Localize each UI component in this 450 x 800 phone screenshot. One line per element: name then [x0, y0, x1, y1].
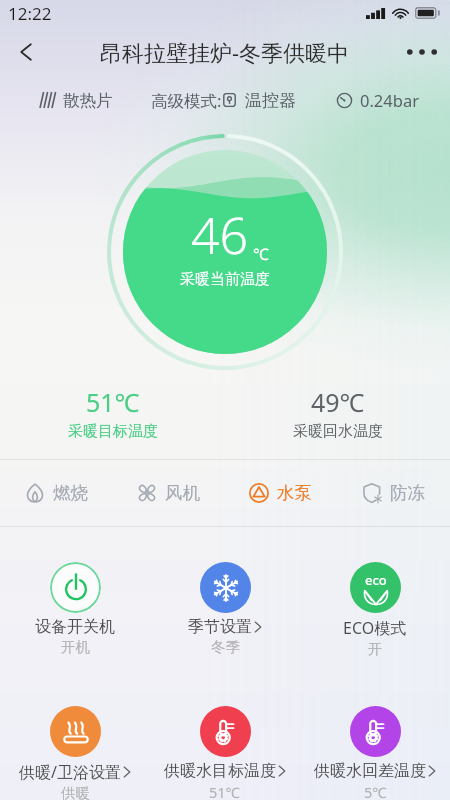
staticText: 46 — [191, 201, 249, 269]
staticText: 温控器 — [245, 90, 296, 111]
staticText: 5℃ — [364, 782, 387, 800]
staticText: 49℃ — [311, 385, 365, 419]
button[interactable]: 供暖水回差温度 — [300, 706, 450, 800]
button[interactable]: Back — [6, 31, 48, 73]
staticText: 供暖水回差温度 — [314, 761, 426, 781]
staticText: 采暖目标温度 — [68, 422, 158, 441]
button[interactable]: 供暖/卫浴设置 — [0, 706, 150, 800]
staticText: 昂科拉壁挂炉-冬季供暖中 — [100, 37, 350, 67]
staticText: 12:22 — [8, 2, 52, 25]
staticText: 供暖 — [61, 784, 90, 800]
staticText: 季节设置 — [188, 617, 252, 637]
staticText: 冬季 — [211, 638, 240, 656]
staticText: 采暖当前温度 — [180, 270, 270, 289]
staticText: 0.24bar — [360, 89, 419, 111]
staticText: 开 — [368, 640, 383, 658]
staticText: 防冻 — [390, 482, 425, 504]
button[interactable]: 设备开关机 — [0, 562, 150, 656]
staticText: ℃ — [253, 243, 269, 265]
staticText: ECO模式 — [343, 617, 407, 639]
button[interactable]: 供暖水目标温度 — [150, 706, 300, 800]
button[interactable]: More options — [402, 32, 442, 72]
button[interactable]: 风机 — [112, 460, 224, 526]
staticText: 采暖回水温度 — [293, 422, 383, 441]
staticText: 设备开关机 — [35, 617, 115, 637]
staticText: eco — [365, 571, 387, 589]
button[interactable]: 季节设置 — [150, 562, 300, 656]
button[interactable]: 水泵 — [224, 460, 337, 526]
staticText: 供暖/卫浴设置 — [19, 761, 121, 783]
staticText: 水泵 — [277, 482, 312, 504]
staticText: 风机 — [165, 482, 200, 504]
button[interactable]: eco — [300, 562, 450, 658]
staticText: 51℃ — [86, 385, 140, 419]
button[interactable]: 防冻 — [337, 460, 450, 526]
staticText: 散热片 — [63, 90, 113, 111]
staticText: 51℃ — [209, 782, 241, 800]
staticText: 供暖水目标温度 — [164, 761, 276, 781]
staticText: 燃烧 — [53, 482, 88, 504]
staticText: 高级模式: — [151, 89, 222, 112]
staticText: 开机 — [61, 638, 90, 656]
button[interactable]: 燃烧 — [0, 460, 112, 526]
